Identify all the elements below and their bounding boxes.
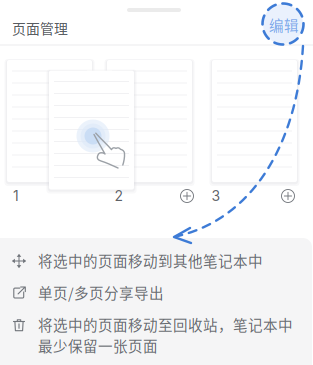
button[interactable]: 将选中的页面移动到其他笔记本中 xyxy=(0,248,313,279)
staticText: 页面管理 xyxy=(12,18,68,38)
button[interactable]: 编辑 xyxy=(262,10,306,40)
staticText: 单页/多页分享导出 xyxy=(38,282,164,303)
staticText: 最少保留一张页面 xyxy=(38,335,158,356)
staticText: 3 xyxy=(211,187,220,204)
button[interactable]: 将选中的页面移动至回收站，笔记本中 xyxy=(0,312,313,364)
staticText: 1 xyxy=(13,187,19,204)
staticText: 编辑 xyxy=(269,14,299,35)
staticText: 将选中的页面移动至回收站，笔记本中 xyxy=(38,314,293,335)
staticText: 2 xyxy=(114,187,123,204)
button[interactable]: Add page xyxy=(277,185,299,207)
staticText: 将选中的页面移动到其他笔记本中 xyxy=(38,250,263,271)
button[interactable]: Add page xyxy=(176,185,198,207)
button[interactable]: 单页/多页分享导出 xyxy=(0,280,313,311)
